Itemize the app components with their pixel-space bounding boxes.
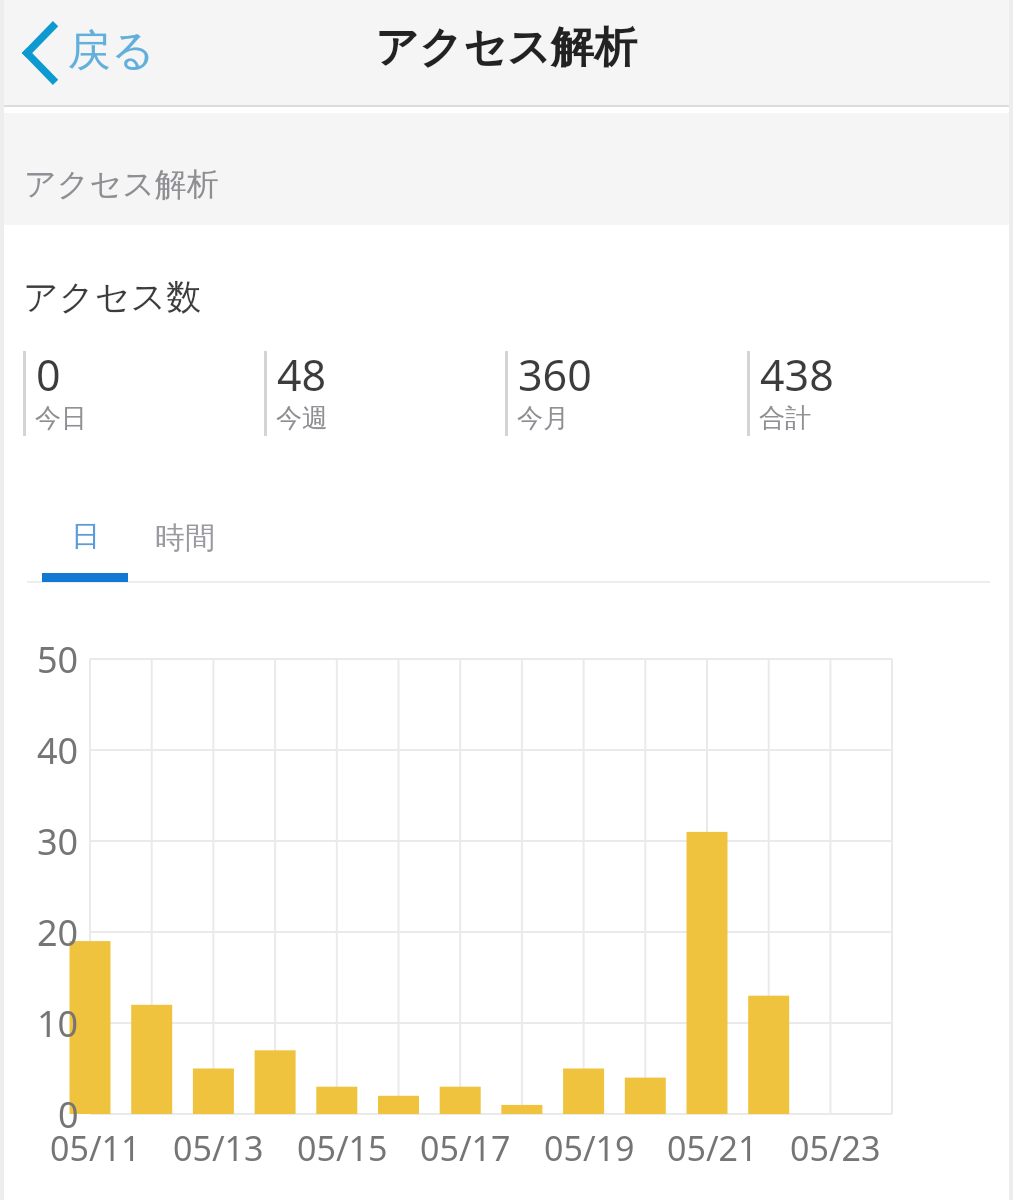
staticText: 10 bbox=[37, 999, 79, 1048]
button[interactable]: 0 bbox=[23, 351, 264, 436]
staticText: アクセス数 bbox=[23, 275, 202, 319]
staticText: 日 bbox=[71, 518, 100, 555]
staticText: 05/19 bbox=[544, 1125, 635, 1171]
staticText: 05/17 bbox=[420, 1125, 511, 1171]
staticText: 50 bbox=[37, 635, 79, 684]
staticText: 40 bbox=[37, 726, 79, 775]
staticText: 438 bbox=[760, 345, 834, 404]
staticText: 20 bbox=[37, 908, 79, 957]
button[interactable]: 360 bbox=[505, 351, 747, 436]
button[interactable]: Back bbox=[12, 0, 166, 105]
button[interactable]: 時間 bbox=[127, 490, 243, 584]
staticText: 30 bbox=[37, 817, 79, 866]
staticText: 今月 bbox=[517, 402, 569, 435]
staticText: 48 bbox=[277, 345, 327, 404]
button[interactable]: 438 bbox=[747, 351, 989, 436]
staticText: 05/11 bbox=[50, 1125, 141, 1171]
staticText: 05/23 bbox=[790, 1125, 881, 1171]
button[interactable]: 48 bbox=[264, 351, 505, 436]
staticText: 合計 bbox=[759, 402, 811, 435]
button[interactable]: 日 bbox=[43, 490, 127, 584]
staticText: 今日 bbox=[35, 402, 87, 435]
staticText: 05/13 bbox=[173, 1125, 264, 1171]
other: Back bbox=[22, 24, 58, 82]
staticText: 05/15 bbox=[297, 1125, 388, 1171]
staticText: 0 bbox=[36, 345, 61, 404]
staticText: 360 bbox=[518, 345, 592, 404]
staticText: 05/21 bbox=[667, 1125, 758, 1171]
staticText: アクセス解析 bbox=[375, 21, 638, 75]
staticText: 戻る bbox=[68, 24, 156, 78]
staticText: 時間 bbox=[155, 519, 215, 557]
staticText: アクセス解析 bbox=[24, 164, 219, 204]
staticText: 今週 bbox=[276, 402, 328, 435]
staticText: 0 bbox=[58, 1090, 79, 1139]
